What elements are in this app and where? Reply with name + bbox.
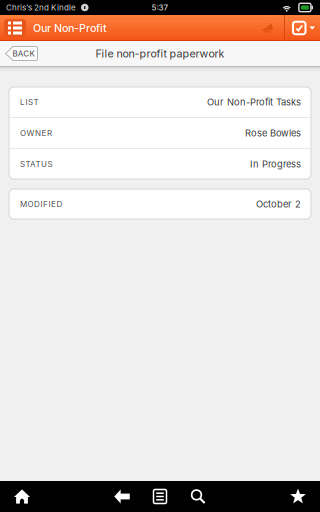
button[interactable]: Task list menu bbox=[285, 15, 320, 41]
staticText: 5:37 bbox=[151, 3, 168, 12]
staticText: OWNER bbox=[20, 128, 52, 138]
staticText: In Progress bbox=[250, 158, 301, 170]
staticText: Our Non-Profit bbox=[33, 21, 107, 34]
staticText: Chris's 2nd Kindle bbox=[6, 3, 76, 12]
button[interactable]: Favorites bbox=[276, 481, 320, 512]
button[interactable]: Back bbox=[0, 41, 38, 66]
button[interactable]: Home bbox=[0, 481, 44, 512]
button[interactable]: Announcements bbox=[250, 15, 284, 41]
button[interactable]: Lists bbox=[0, 15, 33, 41]
staticText: File non-profit paperwork bbox=[95, 47, 224, 60]
button[interactable]: Back bbox=[103, 481, 141, 512]
staticText: LIST bbox=[20, 97, 38, 107]
button[interactable]: Menu bbox=[141, 481, 179, 512]
staticText: MODIFIED bbox=[20, 199, 62, 209]
staticText: STATUS bbox=[20, 159, 52, 169]
staticText: Rose Bowles bbox=[245, 127, 301, 139]
staticText: October 2 bbox=[256, 198, 301, 210]
staticText: Our Non-Profit Tasks bbox=[207, 96, 301, 108]
staticText: BACK bbox=[13, 49, 34, 58]
button[interactable]: Search bbox=[179, 481, 217, 512]
